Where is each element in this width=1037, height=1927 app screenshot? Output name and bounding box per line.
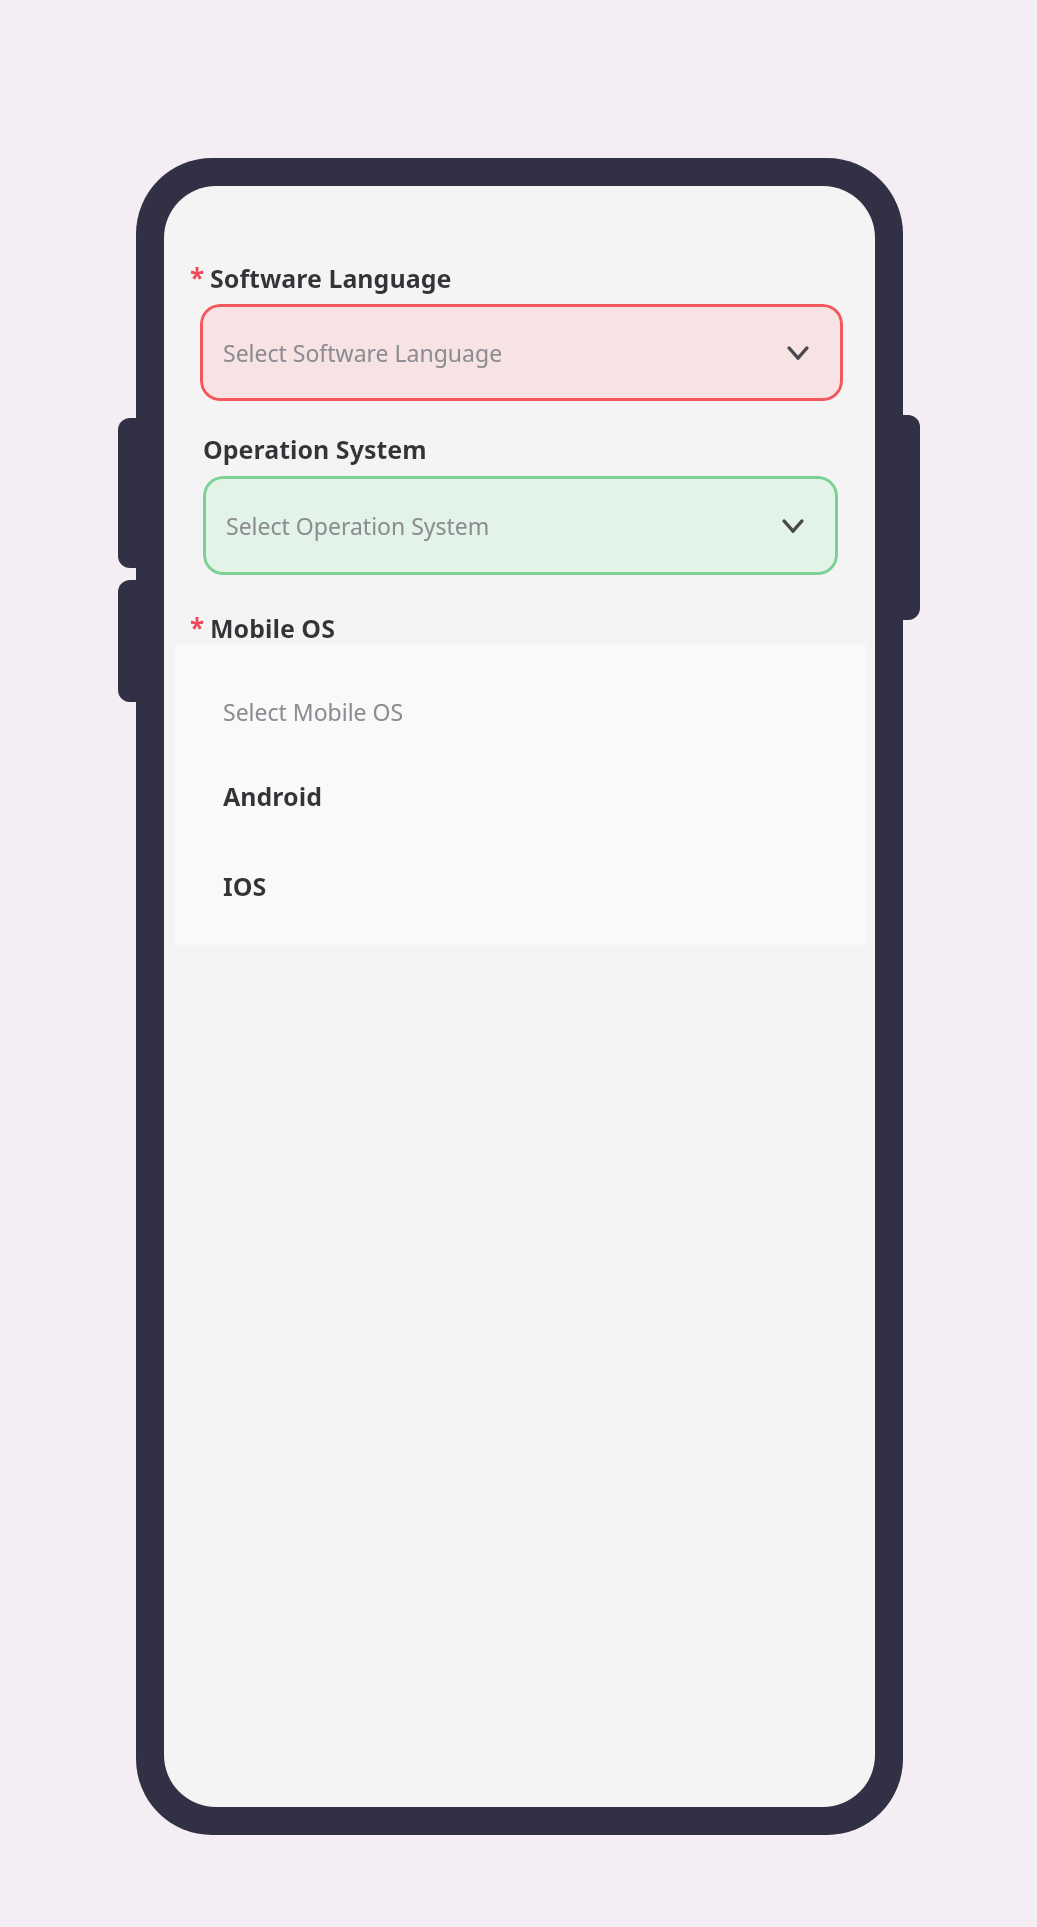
staticText: Select Operation System — [226, 510, 490, 541]
staticText: Select Software Language — [223, 337, 503, 368]
staticText: Select Mobile OS — [223, 696, 404, 727]
staticText: * — [190, 610, 205, 645]
button[interactable]: Select Operation System — [203, 476, 838, 575]
staticText: * — [190, 260, 205, 295]
staticText: Software Language — [210, 261, 452, 295]
staticText: IOS — [223, 869, 267, 903]
button[interactable]: Select Software Language — [200, 304, 843, 401]
button[interactable]: IOS — [175, 853, 866, 919]
button[interactable]: Android — [175, 763, 866, 829]
staticText: Mobile OS — [210, 611, 335, 645]
button[interactable]: Select Mobile OS — [175, 678, 866, 744]
staticText: Android — [223, 779, 322, 813]
staticText: Operation System — [203, 432, 427, 466]
